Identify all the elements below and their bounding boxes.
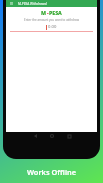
staticText: 0.00 bbox=[48, 24, 57, 30]
button[interactable]: Back bbox=[27, 130, 43, 142]
staticText: M-PESA Withdrawal bbox=[18, 2, 47, 6]
button[interactable]: Home bbox=[44, 130, 60, 142]
button[interactable]: 0.00 bbox=[6, 23, 97, 31]
button[interactable]: Menu bbox=[10, 2, 13, 5]
staticText: PESA bbox=[49, 9, 62, 16]
staticText: Enter the amount you want to withdraw bbox=[6, 18, 97, 22]
button[interactable]: Recent apps bbox=[61, 130, 77, 142]
staticText: Works Offline bbox=[0, 167, 103, 177]
staticText: - bbox=[47, 9, 49, 16]
staticText: M bbox=[41, 9, 47, 16]
